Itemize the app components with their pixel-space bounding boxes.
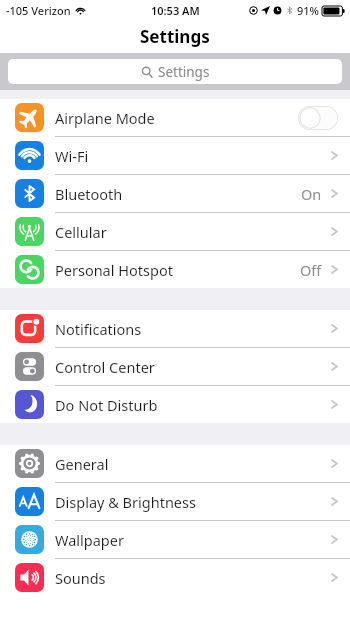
staticText: General (55, 454, 109, 474)
staticText: Wallpaper (55, 530, 124, 550)
button[interactable]: Do Not Disturb (0, 386, 350, 423)
button[interactable]: Bluetooth (0, 175, 350, 212)
staticText: Off (300, 260, 322, 280)
staticText: 10:53 AM (151, 3, 200, 18)
button[interactable]: Notifications (0, 310, 350, 347)
staticText: Airplane Mode (55, 108, 155, 128)
staticText: Cellular (55, 222, 107, 242)
staticText: Settings (140, 25, 210, 48)
button[interactable]: Wallpaper (0, 521, 350, 558)
staticText: On (301, 184, 322, 204)
staticText: Bluetooth (55, 184, 123, 204)
staticText: Notifications (55, 319, 142, 339)
staticText: 91% (297, 3, 319, 18)
button[interactable]: Airplane Mode toggle, off (298, 106, 338, 130)
button[interactable]: Personal Hotspot (0, 251, 350, 288)
button[interactable]: Control Center (0, 348, 350, 385)
button[interactable]: Wi-Fi (0, 137, 350, 174)
button[interactable]: Sounds (0, 559, 350, 596)
staticText: Do Not Disturb (55, 395, 158, 415)
staticText: Settings (158, 63, 210, 81)
staticText: -105 Verizon (6, 3, 71, 18)
button[interactable]: Airplane Mode (0, 99, 350, 136)
button[interactable]: Cellular (0, 213, 350, 250)
button[interactable]: General (0, 445, 350, 482)
staticText: Display & Brightness (55, 492, 196, 512)
staticText: Wi-Fi (55, 146, 89, 166)
staticText: Control Center (55, 357, 155, 377)
button[interactable]: Display & Brightness (0, 483, 350, 520)
staticText: Sounds (55, 568, 106, 588)
button[interactable]: Settings (8, 59, 342, 84)
staticText: Personal Hotspot (55, 260, 173, 280)
